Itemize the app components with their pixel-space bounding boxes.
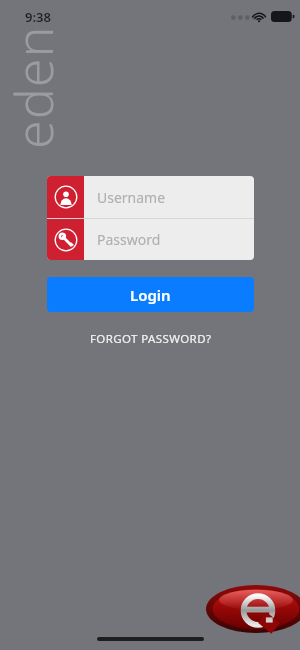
- button[interactable]: Login: [47, 277, 254, 312]
- staticText: Login: [130, 285, 171, 305]
- button[interactable]: Username: [47, 176, 254, 218]
- staticText: Username: [97, 188, 166, 207]
- button[interactable]: FORGOT PASSWORD?: [47, 328, 254, 350]
- other: Eden logo: [206, 585, 300, 633]
- staticText: Password: [97, 230, 161, 249]
- button[interactable]: Password: [47, 219, 254, 260]
- staticText: 9:38: [25, 8, 51, 26]
- staticText: eden: [0, 25, 59, 149]
- staticText: FORGOT PASSWORD?: [90, 331, 212, 347]
